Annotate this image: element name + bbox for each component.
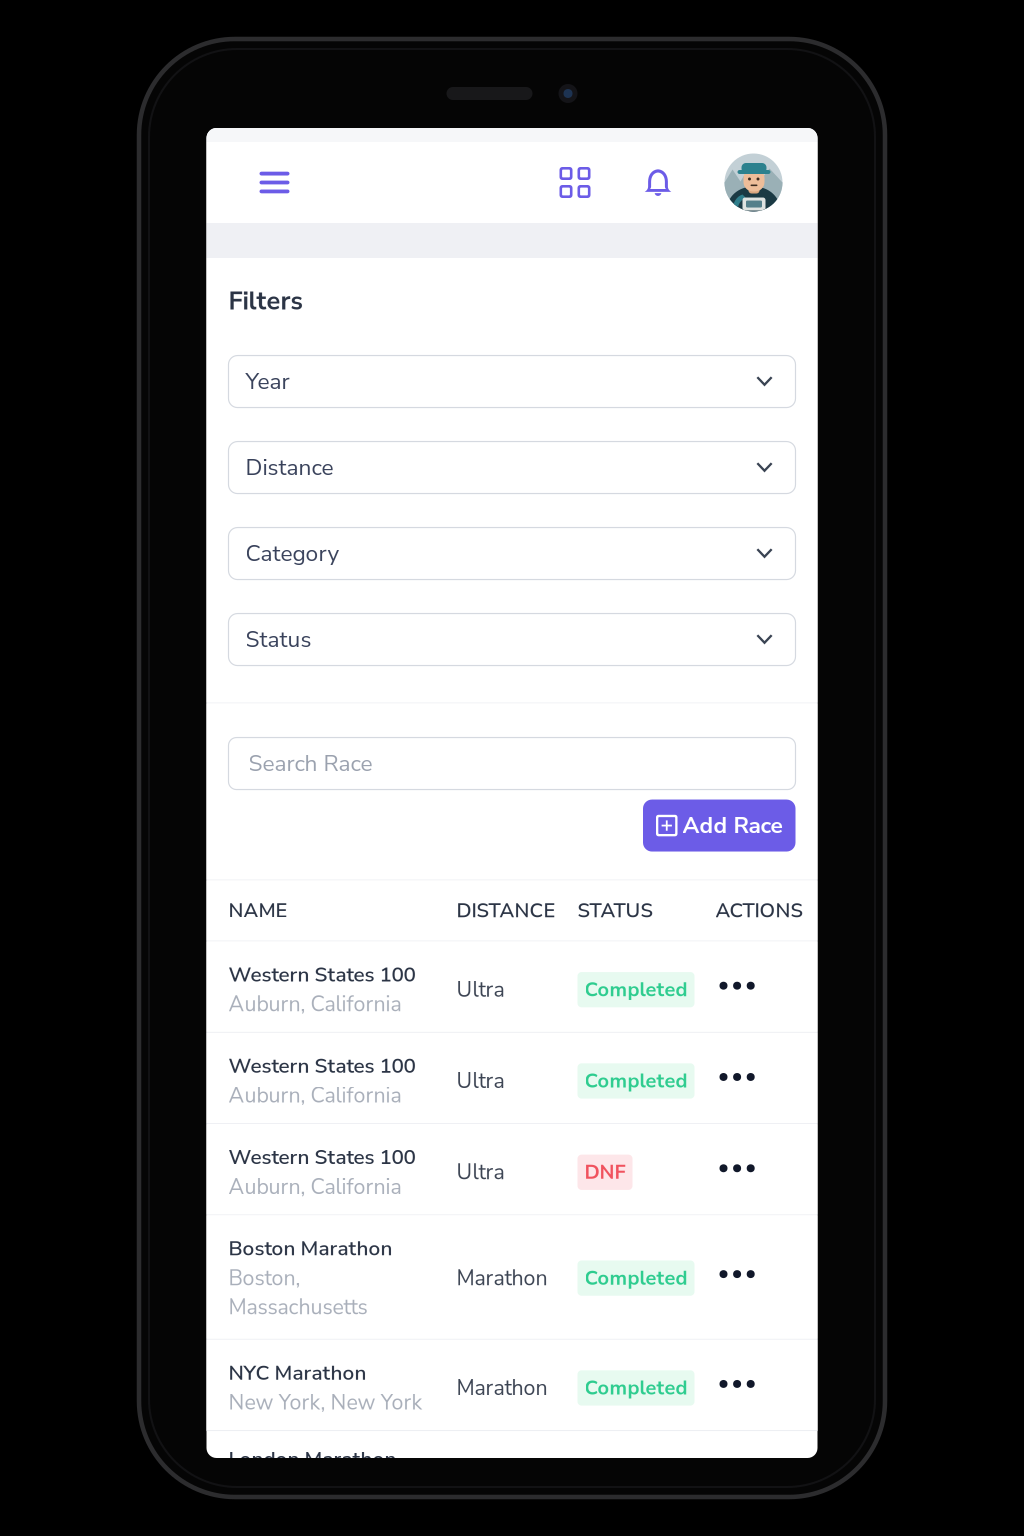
button[interactable]: Menu [247, 156, 301, 209]
button[interactable]: Notifications [633, 157, 682, 207]
button[interactable]: Year [228, 356, 795, 408]
button[interactable]: Western States 100 [206, 1124, 817, 1214]
staticText: DNF [584, 1159, 625, 1186]
staticText: Distance [245, 452, 333, 483]
staticText: Completed [584, 1374, 687, 1402]
staticText: Marathon [456, 1264, 547, 1293]
staticText: Status [245, 624, 311, 655]
button[interactable]: Western States 100 [206, 942, 817, 1032]
staticText: Auburn, California [228, 990, 401, 1019]
button[interactable]: More actions for NYC Marathon [715, 1377, 755, 1399]
button[interactable]: Add Race [643, 800, 795, 852]
staticText: Ultra [456, 1158, 504, 1187]
staticText: ACTIONS [715, 897, 802, 924]
staticText: Ultra [456, 1066, 504, 1095]
staticText: Boston, Massachusetts [228, 1264, 367, 1322]
staticText: Ultra [456, 975, 504, 1004]
button[interactable]: NYC Marathon [206, 1340, 817, 1430]
button[interactable]: Search Race [228, 738, 795, 790]
staticText: Western States 100 [228, 961, 415, 989]
staticText: Auburn, California [228, 1081, 401, 1110]
staticText: Year [245, 366, 289, 397]
staticText: Western States 100 [228, 1052, 415, 1080]
staticText: Completed [584, 1264, 687, 1292]
button[interactable]: More actions for Western States 100 [715, 1070, 755, 1092]
staticText: Western States 100 [228, 1143, 415, 1171]
staticText: London Marathon [228, 1445, 396, 1473]
button[interactable]: Category [228, 528, 795, 580]
button[interactable]: Boston Marathon [206, 1215, 817, 1339]
button[interactable]: Dashboard [549, 157, 600, 208]
staticText: Search Race [248, 748, 372, 779]
staticText: Completed [584, 1067, 687, 1095]
staticText: STATUS [577, 897, 652, 924]
button[interactable]: More actions for Western States 100 [715, 1161, 755, 1183]
staticText: Auburn, California [228, 1172, 401, 1201]
staticText: Add Race [682, 810, 782, 841]
staticText: Category [245, 538, 339, 569]
button[interactable]: More actions for Boston Marathon [715, 1267, 755, 1289]
staticText: NYC Marathon [228, 1359, 366, 1387]
staticText: DISTANCE [456, 897, 555, 924]
button[interactable]: More actions for Western States 100 [715, 979, 755, 1001]
staticText: New York, New York [228, 1388, 422, 1417]
staticText: Completed [584, 976, 687, 1003]
staticText: Boston Marathon [228, 1234, 392, 1263]
staticText: NAME [228, 897, 287, 924]
button[interactable]: Western States 100 [206, 1033, 817, 1123]
staticText: Marathon [456, 1373, 547, 1402]
button[interactable]: Status [228, 614, 795, 666]
staticText: Filters [228, 284, 302, 319]
button[interactable]: Profile [724, 153, 782, 211]
button[interactable]: Distance [228, 442, 795, 494]
